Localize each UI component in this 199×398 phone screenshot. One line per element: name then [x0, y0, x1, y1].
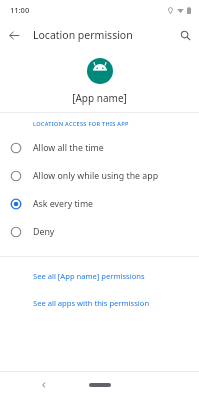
staticText: Allow only while using the app — [33, 170, 159, 182]
staticText: LOCATION ACCESS FOR THIS APP — [33, 120, 129, 128]
staticText: [App name] — [72, 91, 127, 105]
staticText: Ask every time — [33, 198, 94, 210]
staticText: See all [App name] permissions — [33, 271, 145, 281]
button[interactable]: Deny — [0, 218, 199, 246]
button[interactable]: Back — [5, 26, 23, 44]
button[interactable]: Search — [176, 26, 194, 44]
staticText: Deny — [33, 226, 55, 238]
button[interactable]: See all [App name] permissions — [0, 269, 199, 283]
button[interactable]: Allow all the time — [0, 134, 199, 162]
button[interactable]: Back — [36, 377, 52, 393]
staticText: 11:00 — [10, 5, 30, 15]
staticText: See all apps with this permission — [33, 298, 150, 308]
staticText: Allow all the time — [33, 142, 104, 154]
button[interactable]: Home — [87, 375, 113, 395]
button[interactable]: See all apps with this permission — [0, 296, 199, 310]
button[interactable]: Allow only while using the app — [0, 162, 199, 190]
button[interactable]: Ask every time — [0, 190, 199, 218]
staticText: Location permission — [33, 28, 133, 42]
